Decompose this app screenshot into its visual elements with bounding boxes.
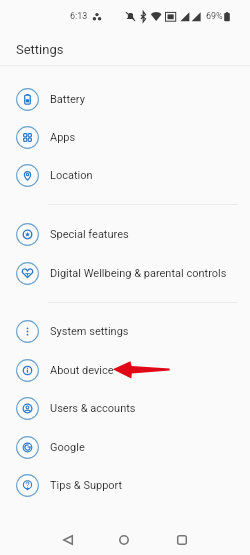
button[interactable]: Location: [0, 156, 250, 194]
staticText: Digital Wellbeing & parental controls: [50, 267, 227, 280]
button[interactable]: Digital Wellbeing & parental controls: [0, 254, 250, 292]
staticText: Users & accounts: [50, 402, 136, 415]
button[interactable]: Tips & Support: [0, 466, 250, 504]
button[interactable]: Apps: [0, 118, 250, 156]
staticText: Apps: [50, 131, 76, 144]
button[interactable]: Users & accounts: [0, 389, 250, 427]
button[interactable]: About device: [0, 351, 250, 389]
button[interactable]: Google: [0, 428, 250, 466]
staticText: 69%: [206, 11, 223, 22]
staticText: Special features: [50, 228, 129, 241]
staticText: Location: [50, 169, 93, 182]
staticText: About device: [50, 364, 114, 377]
button[interactable]: Battery: [0, 80, 250, 118]
staticText: System settings: [50, 325, 129, 338]
button[interactable]: System settings: [0, 312, 250, 350]
staticText: Tips & Support: [50, 479, 123, 492]
button[interactable]: Back: [53, 525, 82, 554]
button[interactable]: Home: [109, 525, 138, 554]
staticText: Battery: [50, 93, 85, 106]
button[interactable]: Recents: [167, 525, 196, 554]
staticText: 6:13: [70, 11, 88, 22]
staticText: Google: [50, 441, 85, 454]
button[interactable]: Special features: [0, 215, 250, 253]
staticText: Settings: [16, 42, 64, 57]
